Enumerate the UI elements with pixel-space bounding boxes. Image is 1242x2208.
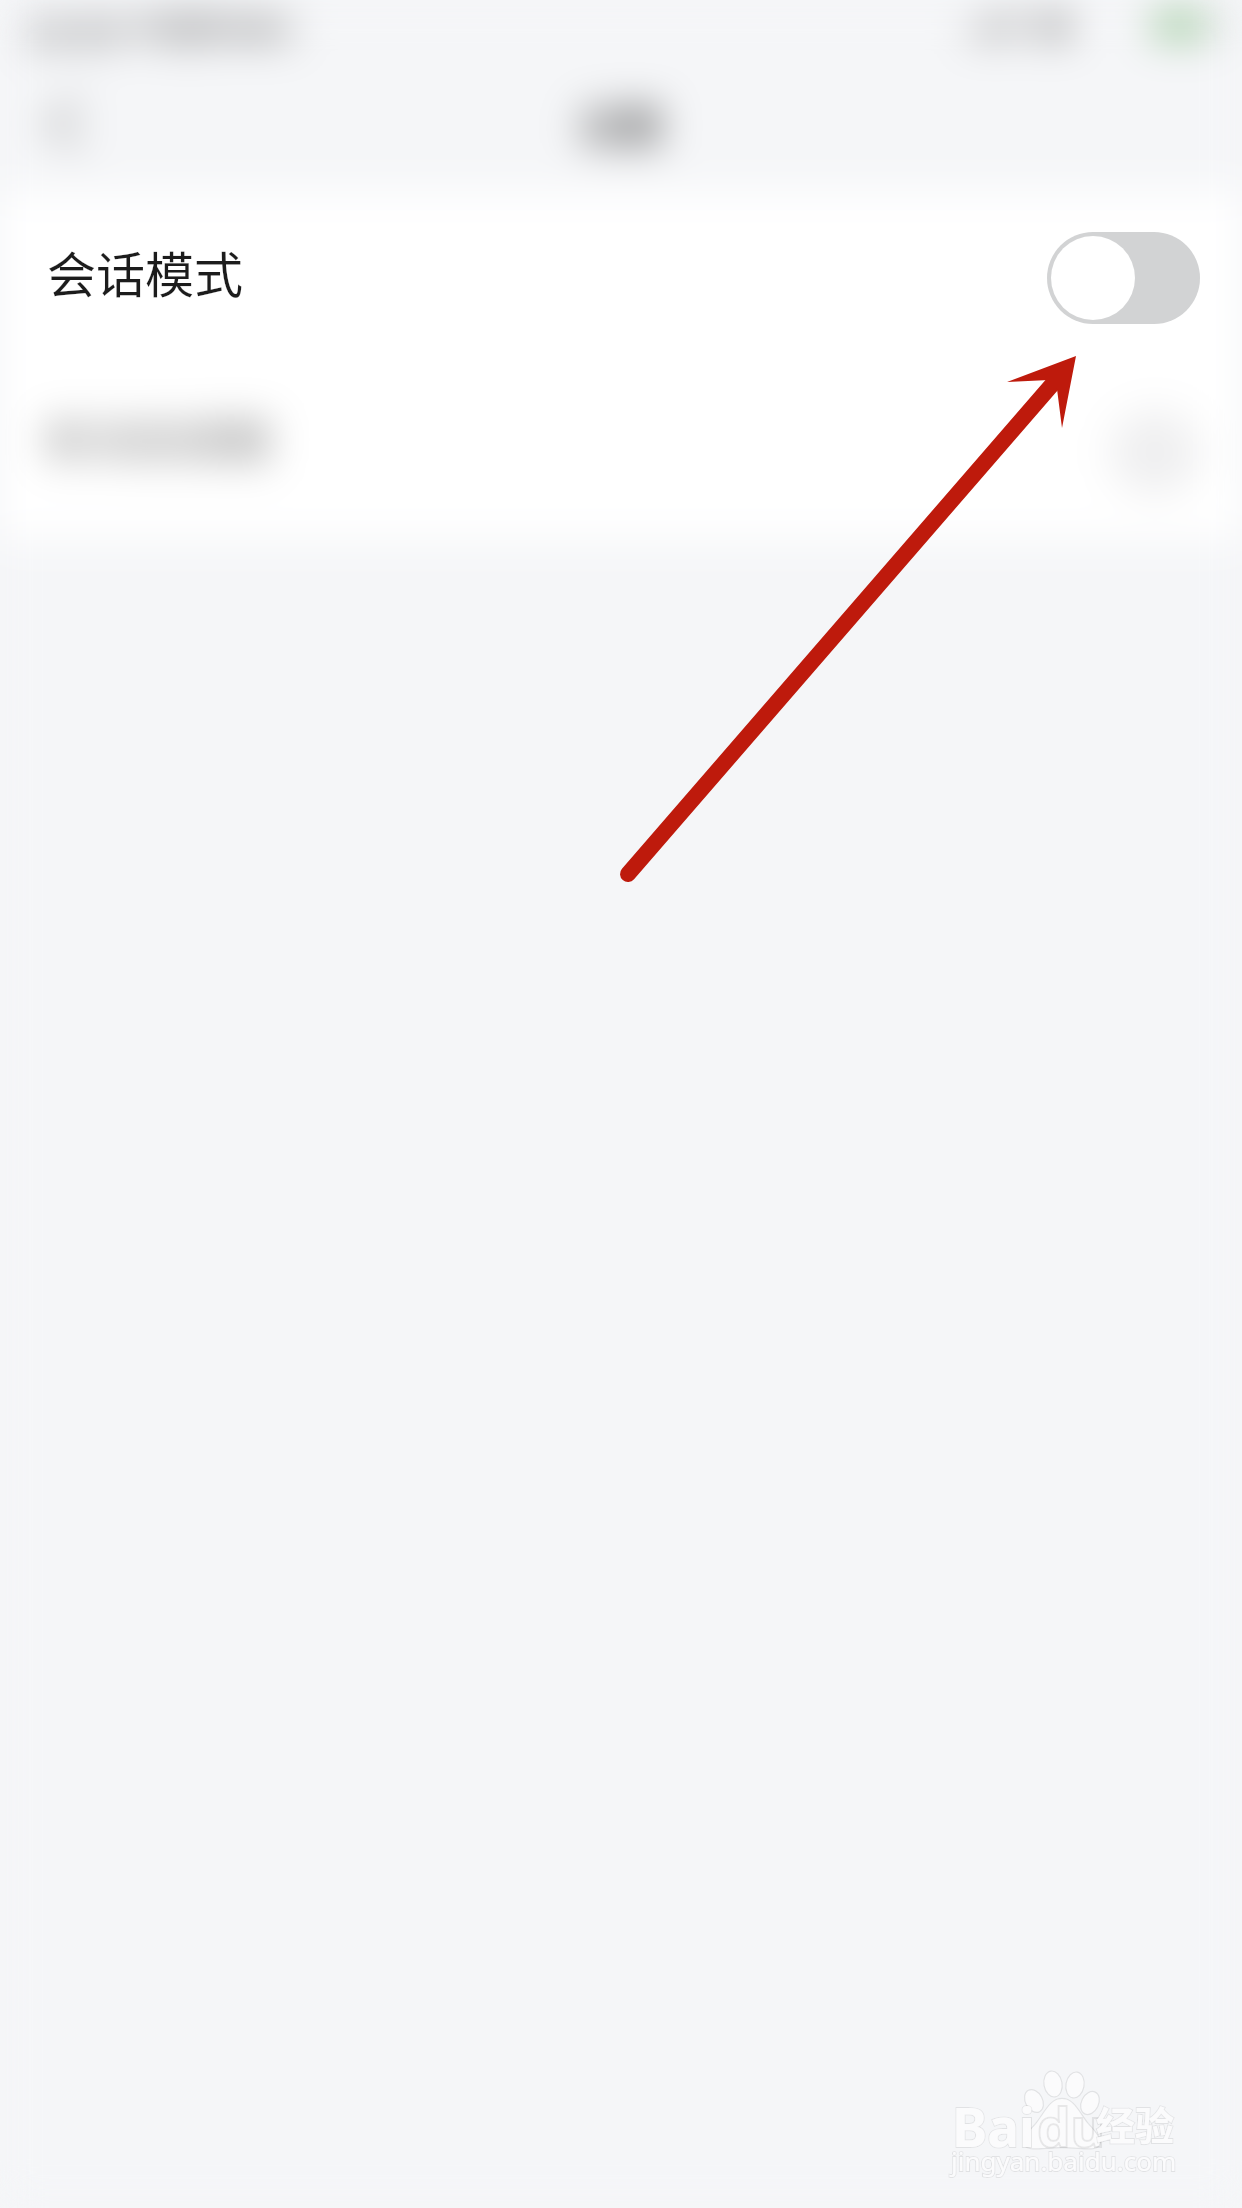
staticText: 4G	[254, 3, 296, 51]
staticText: du	[1037, 2090, 1105, 2162]
button[interactable]: 会话模式开关	[1047, 232, 1200, 324]
staticText: jingyan.baidu.com	[951, 2143, 1177, 2178]
staticText: 经验	[1096, 2095, 1175, 2151]
staticText: 设置	[579, 93, 664, 154]
staticText: jingyan.baidu.com	[951, 2143, 1177, 2178]
staticText: Bai	[952, 2090, 1035, 2162]
staticText: du	[1037, 2090, 1105, 2162]
staticText: 经验	[1096, 2095, 1175, 2151]
staticText: 中国移动	[130, 3, 262, 51]
staticText: 10:09	[26, 2, 121, 57]
button[interactable]: 会话模式	[0, 191, 1242, 351]
staticText: 会话模式	[47, 236, 244, 307]
staticText: Bai	[952, 2090, 1035, 2162]
staticText: 新消息提醒	[46, 406, 272, 471]
